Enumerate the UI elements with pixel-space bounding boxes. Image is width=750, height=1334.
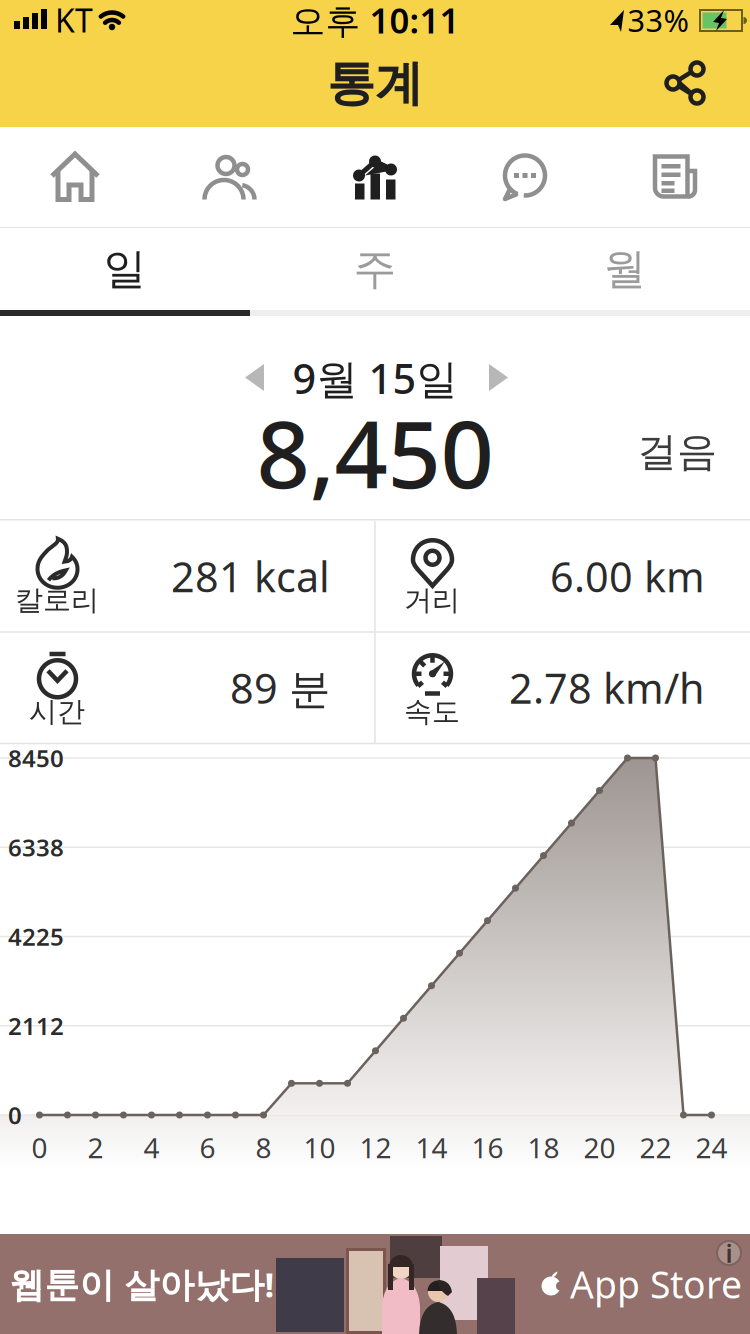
staticText: 281 kcal [171, 549, 330, 604]
staticText: 통계 [327, 54, 423, 113]
staticText: 6338 [8, 831, 64, 863]
staticText: 속도 [404, 695, 460, 729]
staticText: 월 [603, 243, 646, 295]
staticText: 10 [303, 1129, 335, 1166]
button[interactable]: 친구 [150, 127, 300, 227]
button[interactable]: Share [664, 48, 710, 118]
staticText: 6 [199, 1129, 215, 1166]
staticText: 주 [353, 243, 396, 295]
staticText: 9월 15일 [292, 351, 457, 405]
button[interactable]: 통계 [300, 127, 450, 227]
staticText: 걸음 [637, 427, 717, 476]
button[interactable]: 채팅 [450, 127, 600, 227]
staticText: App Store [570, 1259, 742, 1309]
button[interactable]: 뉴스 [600, 127, 750, 227]
staticText: 2112 [8, 1010, 64, 1042]
staticText: 14 [415, 1129, 447, 1166]
button[interactable]: 광고 [0, 1234, 750, 1334]
staticText: 24 [695, 1129, 727, 1166]
staticText: 8,450 [256, 390, 493, 514]
staticText: 8 [255, 1129, 271, 1166]
button[interactable]: 일 [0, 228, 250, 310]
button[interactable]: 주 [250, 228, 500, 310]
staticText: 4 [143, 1129, 159, 1166]
staticText: 18 [527, 1129, 559, 1166]
staticText: 0 [31, 1129, 47, 1166]
staticText: 4225 [8, 921, 64, 952]
button[interactable]: 이전 날짜 [245, 364, 264, 391]
staticText: 6.00 km [550, 549, 705, 604]
button[interactable]: 다음 날짜 [489, 364, 508, 391]
staticText: 16 [471, 1129, 503, 1166]
staticText: 8450 [8, 742, 64, 774]
staticText: 일 [103, 243, 146, 295]
staticText: 칼로리 [15, 583, 99, 617]
staticText: 22 [639, 1129, 671, 1166]
staticText: 0 [8, 1099, 22, 1131]
staticText: i [725, 1236, 732, 1270]
staticText: 2 [87, 1129, 103, 1166]
button[interactable]: 월 [500, 228, 750, 310]
button[interactable]: 홈 [0, 127, 150, 227]
staticText: 거리 [404, 583, 460, 617]
staticText: 12 [359, 1129, 391, 1166]
staticText: KT [55, 0, 93, 41]
staticText: 웹툰이 살아났다! [9, 1261, 274, 1307]
staticText: 33% [627, 0, 688, 40]
staticText: 오후 10:11 [290, 0, 459, 43]
staticText: 89 분 [230, 660, 330, 715]
staticText: 시간 [29, 695, 85, 729]
staticText: 2.78 km/h [509, 660, 705, 715]
staticText: 20 [583, 1129, 615, 1166]
